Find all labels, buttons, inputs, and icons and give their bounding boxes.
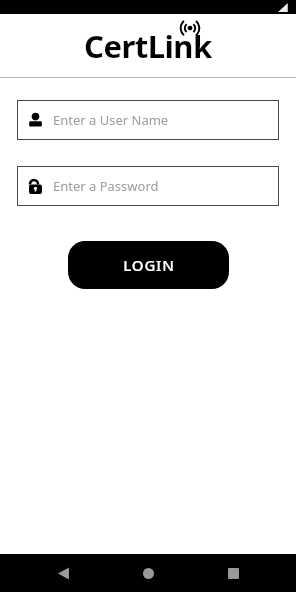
button[interactable]: Enter a Password: [17, 166, 279, 206]
button[interactable]: Back: [46, 556, 80, 590]
staticText: LOGIN: [123, 255, 175, 275]
button[interactable]: Enter a User Name: [17, 100, 279, 140]
staticText: Enter a User Name: [53, 111, 169, 129]
button[interactable]: LOGIN: [68, 241, 229, 289]
staticText: Enter a Password: [53, 177, 159, 195]
staticText: CertLink: [84, 25, 212, 67]
button[interactable]: Recent apps: [216, 556, 250, 590]
button[interactable]: Home: [131, 556, 165, 590]
